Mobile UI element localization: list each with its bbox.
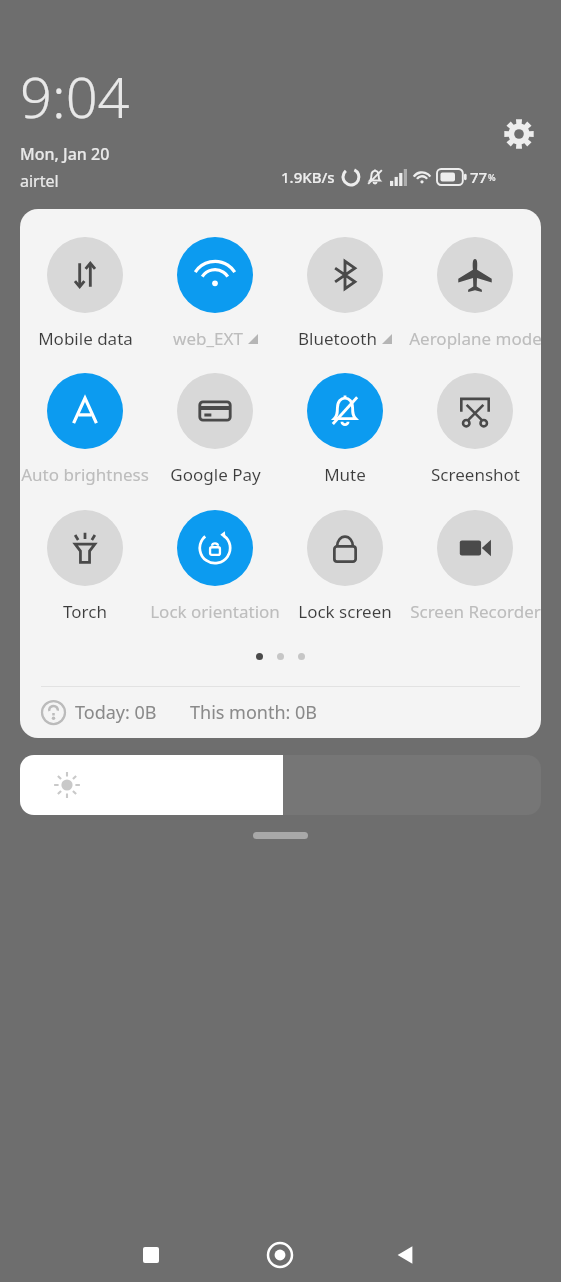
staticText: airtel	[20, 170, 59, 192]
button[interactable]: Today: 0B	[20, 686, 541, 738]
button[interactable]: Brightness	[20, 755, 541, 815]
button[interactable]: web_EXT	[150, 237, 280, 350]
staticText: Aeroplane mode	[409, 327, 541, 350]
button[interactable]: Back	[376, 1227, 436, 1282]
button[interactable]: Bluetooth	[280, 237, 410, 350]
staticText: Mute	[324, 463, 366, 486]
staticText: Mobile data	[38, 327, 133, 350]
staticText: Lock screen	[298, 600, 392, 623]
button[interactable]: Aeroplane mode	[410, 237, 540, 350]
staticText: Mon, Jan 20	[20, 143, 110, 165]
staticText: Screenshot	[431, 463, 520, 486]
button[interactable]: Screen Recorder	[410, 510, 540, 623]
button[interactable]: Auto brightness	[20, 373, 150, 486]
staticText: Today: 0B	[75, 700, 157, 725]
staticText: Torch	[63, 600, 107, 623]
button[interactable]: Lock screen	[280, 510, 410, 623]
button[interactable]: Mobile data	[20, 237, 150, 350]
staticText: %	[488, 171, 496, 183]
staticText: 9:04	[20, 58, 130, 134]
staticText: Lock orientation	[150, 600, 280, 623]
staticText: Bluetooth	[298, 327, 377, 350]
button[interactable]: Torch	[20, 510, 150, 623]
staticText: web_EXT	[173, 327, 243, 350]
staticText: Screen Recorder	[410, 600, 541, 623]
button[interactable]: Settings	[493, 108, 545, 160]
button[interactable]: Recents	[121, 1227, 181, 1282]
staticText: Google Pay	[170, 463, 261, 486]
button[interactable]: Mute	[280, 373, 410, 486]
button[interactable]: Screenshot	[410, 373, 540, 486]
staticText: 77	[470, 167, 488, 187]
button[interactable]: Lock orientation	[150, 510, 280, 623]
button[interactable]: Google Pay	[150, 373, 280, 486]
staticText: Auto brightness	[21, 463, 149, 486]
staticText: This month: 0B	[190, 700, 318, 725]
staticText: 1.9KB/s	[281, 167, 335, 187]
button[interactable]: Home	[250, 1227, 310, 1282]
